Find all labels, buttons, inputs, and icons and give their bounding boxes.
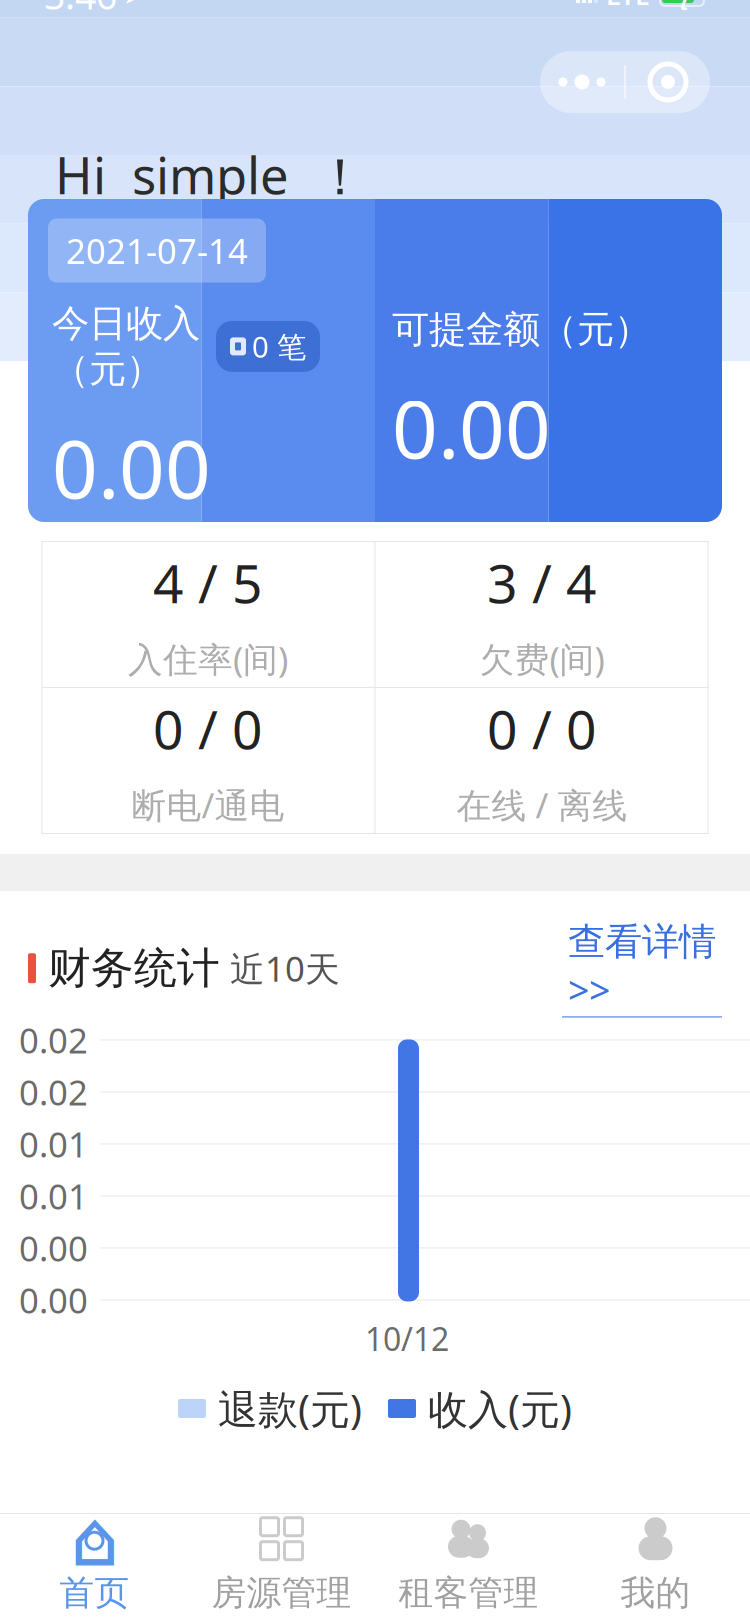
button[interactable]: 4 / 5 — [41, 542, 374, 687]
staticText: 0 / 0 — [487, 693, 597, 764]
staticText: 查看详情>> — [568, 919, 716, 1014]
staticText: 近10天 — [230, 945, 340, 991]
staticText: LTE — [606, 0, 650, 13]
staticText: 3 / 4 — [487, 547, 597, 618]
staticText: 0 / 0 — [153, 693, 263, 764]
staticText: 0.00 — [392, 374, 551, 481]
staticText: 0.00 — [52, 414, 211, 520]
staticText: 欠费(间) — [479, 636, 604, 682]
staticText: 3:46 — [44, 0, 117, 20]
staticText: 4 / 5 — [153, 547, 263, 618]
staticText: 10/12 — [365, 1317, 449, 1360]
staticText: 我的 — [620, 1572, 690, 1614]
button[interactable]: More — [540, 51, 624, 113]
staticText: ϟ — [675, 0, 688, 11]
staticText: 断电/通电 — [131, 782, 284, 828]
staticText: 房源管理 — [211, 1572, 351, 1614]
staticText: 今日收入（元） — [52, 300, 200, 392]
staticText: 0 笔 — [252, 327, 306, 366]
staticText: ➤ — [123, 0, 144, 9]
staticText: 0.00 — [19, 1225, 88, 1271]
staticText: 0.02 — [19, 1017, 88, 1063]
staticText: 退款(元) — [218, 1382, 362, 1435]
button[interactable]: 租客管理 — [375, 1514, 562, 1614]
staticText: 首页 — [59, 1572, 129, 1614]
button[interactable]: 0 / 0 — [375, 688, 708, 833]
button[interactable]: 我的 — [562, 1514, 749, 1614]
button[interactable]: ⌂ — [1, 1514, 188, 1614]
staticText: 可提金额（元） — [392, 306, 651, 352]
button[interactable]: 查看详情>> — [562, 919, 722, 1017]
staticText: ⌂ — [70, 1495, 119, 1583]
staticText: 0.01 — [19, 1173, 88, 1219]
staticText: 租客管理 — [398, 1572, 538, 1614]
button[interactable]: 0 / 0 — [41, 688, 374, 833]
staticText: 0.01 — [19, 1121, 88, 1167]
button[interactable]: 3 / 4 — [375, 542, 708, 687]
staticText: 在线 / 离线 — [456, 782, 627, 828]
staticText: 入住率(间) — [128, 636, 288, 682]
staticText: 0.00 — [19, 1277, 88, 1323]
staticText: 0.02 — [19, 1069, 88, 1115]
staticText: 收入(元) — [428, 1382, 572, 1435]
staticText: 财务统计 — [48, 942, 220, 994]
button[interactable]: 房源管理 — [188, 1514, 375, 1614]
button[interactable]: Close — [626, 51, 710, 113]
staticText: 2021-07-14 — [66, 227, 248, 273]
staticText: Hi simple ！ — [55, 141, 366, 208]
